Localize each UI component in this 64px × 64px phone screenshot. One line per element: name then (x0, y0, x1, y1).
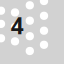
staticText: 4 (11, 10, 24, 40)
